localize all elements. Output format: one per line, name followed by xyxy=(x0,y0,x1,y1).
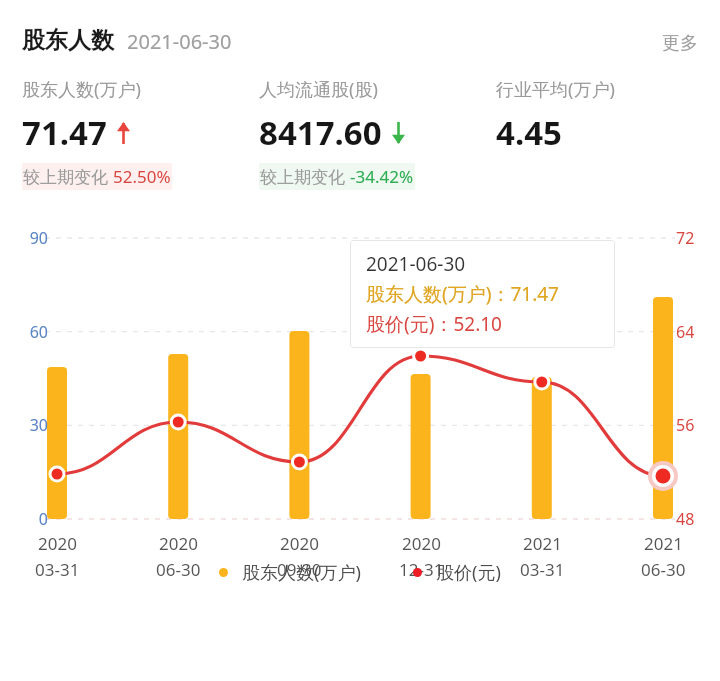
staticText: 56 xyxy=(676,414,695,436)
staticText: 30 xyxy=(14,414,48,436)
button[interactable]: 股价(元) xyxy=(413,560,501,585)
staticText: 2020 xyxy=(280,532,319,555)
staticText: 2021-06-30 xyxy=(127,28,232,55)
staticText: 2021-06-30 xyxy=(366,251,466,277)
button[interactable]: 股东人数(万户) xyxy=(22,77,259,190)
staticText: 股东人数 xyxy=(22,26,114,55)
staticText: 03-31 xyxy=(35,558,80,581)
staticText: 较上期变化 xyxy=(260,165,350,188)
staticText: 行业平均(万户) xyxy=(496,77,615,102)
button[interactable]: 人均流通股(股) xyxy=(259,77,496,190)
button[interactable]: 行业平均(万户) xyxy=(496,77,704,186)
staticText: 12-31 xyxy=(399,558,444,581)
staticText: 06-30 xyxy=(156,558,201,581)
staticText: 03-31 xyxy=(520,558,565,581)
staticText: 股东人数(万户)：71.47 xyxy=(366,281,559,307)
staticText: -34.42% xyxy=(350,165,414,188)
staticText: 60 xyxy=(14,321,48,343)
staticText: 2020 xyxy=(38,532,77,555)
staticText: 股东人数(万户) xyxy=(242,560,361,585)
staticText: 2021 xyxy=(523,532,562,555)
staticText: 71.47 xyxy=(22,110,107,155)
button[interactable]: 更多 xyxy=(662,32,698,55)
staticText: 0 xyxy=(14,508,48,530)
button[interactable]: 股东人数(万户) xyxy=(219,560,361,585)
staticText: 2021 xyxy=(644,532,683,555)
staticText: 较上期变化 xyxy=(23,165,113,188)
staticText: 52.50% xyxy=(113,165,171,188)
staticText: 股价(元)：52.10 xyxy=(366,311,502,337)
staticText: 48 xyxy=(676,508,695,530)
staticText: 06-30 xyxy=(641,558,686,581)
staticText: 更多 xyxy=(662,32,698,55)
staticText: 8417.60 xyxy=(259,110,382,155)
staticText: 90 xyxy=(14,227,48,249)
staticText: 09-30 xyxy=(277,558,322,581)
staticText: 2020 xyxy=(402,532,441,555)
staticText: 人均流通股(股) xyxy=(259,77,378,102)
staticText: 64 xyxy=(676,321,695,343)
staticText: 股价(元) xyxy=(436,560,501,585)
staticText: 2020 xyxy=(159,532,198,555)
staticText: 4.45 xyxy=(496,110,562,155)
staticText: 72 xyxy=(676,227,695,249)
staticText: 股东人数(万户) xyxy=(22,77,141,102)
